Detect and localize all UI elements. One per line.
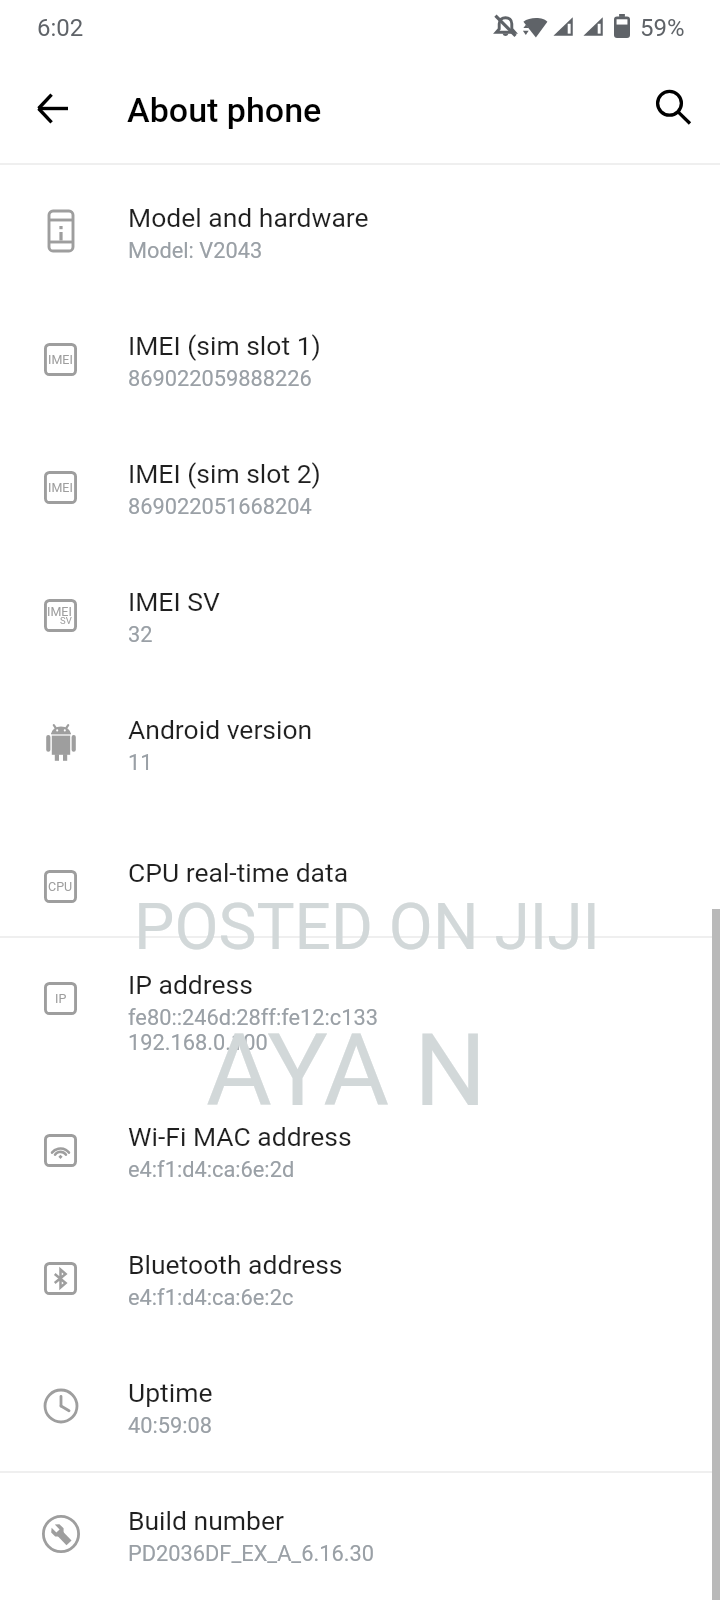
staticText: e4:f1:d4:ca:6e:2d bbox=[128, 1157, 295, 1183]
button[interactable] bbox=[0, 1229, 720, 1309]
button[interactable] bbox=[0, 1101, 720, 1181]
staticText: Android version bbox=[128, 714, 313, 745]
staticText: IMEI bbox=[48, 480, 73, 495]
staticText: 11 bbox=[128, 750, 153, 776]
staticText: 32 bbox=[128, 622, 153, 648]
button[interactable]: Search bbox=[637, 75, 703, 141]
button[interactable] bbox=[0, 837, 720, 887]
staticText: e4:f1:d4:ca:6e:2c bbox=[128, 1285, 294, 1311]
staticText: IMEI (sim slot 2) bbox=[128, 458, 321, 489]
staticText: Wi-Fi MAC address bbox=[128, 1121, 352, 1152]
staticText: CPU real-time data bbox=[128, 857, 349, 888]
button[interactable] bbox=[0, 1485, 720, 1565]
staticText: Build number bbox=[128, 1505, 284, 1536]
button[interactable] bbox=[0, 438, 720, 518]
staticText: About phone bbox=[127, 90, 322, 130]
button[interactable]: Back bbox=[19, 75, 87, 143]
staticText: IP bbox=[55, 991, 67, 1006]
button[interactable] bbox=[0, 949, 720, 1059]
staticText: PD2036DF_EX_A_6.16.30 bbox=[128, 1541, 374, 1567]
staticText: 192.168.0.100 bbox=[128, 1030, 268, 1056]
button[interactable] bbox=[0, 310, 720, 390]
staticText: 59% bbox=[640, 14, 685, 42]
staticText: IMEI SV bbox=[128, 586, 220, 617]
staticText: 6:02 bbox=[37, 14, 84, 42]
staticText: IMEI bbox=[47, 604, 72, 619]
button[interactable] bbox=[0, 1357, 720, 1437]
staticText: SV bbox=[60, 615, 72, 626]
staticText: IP address bbox=[128, 969, 253, 1000]
button[interactable] bbox=[0, 566, 720, 646]
staticText: 40:59:08 bbox=[128, 1413, 213, 1439]
staticText: 869022059888226 bbox=[128, 366, 312, 392]
staticText: Uptime bbox=[128, 1377, 213, 1408]
staticText: 869022051668204 bbox=[128, 494, 312, 520]
staticText: fe80::246d:28ff:fe12:c133 bbox=[128, 1005, 379, 1031]
staticText: Model: V2043 bbox=[128, 238, 263, 264]
staticText: Model and hardware bbox=[128, 202, 369, 233]
button[interactable] bbox=[0, 182, 720, 262]
staticText: IMEI (sim slot 1) bbox=[128, 330, 321, 361]
staticText: Bluetooth address bbox=[128, 1249, 343, 1280]
staticText: IMEI bbox=[48, 352, 73, 367]
staticText: POSTED ON JIJI bbox=[134, 890, 600, 965]
button[interactable] bbox=[0, 694, 720, 774]
staticText: CPU bbox=[48, 879, 73, 894]
staticText: AYA N bbox=[206, 1011, 487, 1129]
